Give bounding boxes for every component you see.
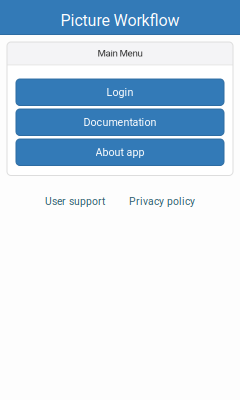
staticText: Picture Workflow [60, 11, 179, 30]
staticText: User support [45, 195, 105, 208]
button[interactable]: User support [44, 193, 106, 210]
staticText: Privacy policy [129, 195, 195, 208]
staticText: Documentation [83, 116, 156, 128]
staticText: Login [106, 86, 133, 98]
staticText: Main Menu [97, 48, 142, 59]
button[interactable]: Login [16, 79, 224, 105]
staticText: About app [95, 146, 144, 158]
button[interactable]: About app [16, 139, 224, 165]
button[interactable]: Documentation [16, 109, 224, 135]
button[interactable]: Privacy policy [128, 193, 196, 210]
